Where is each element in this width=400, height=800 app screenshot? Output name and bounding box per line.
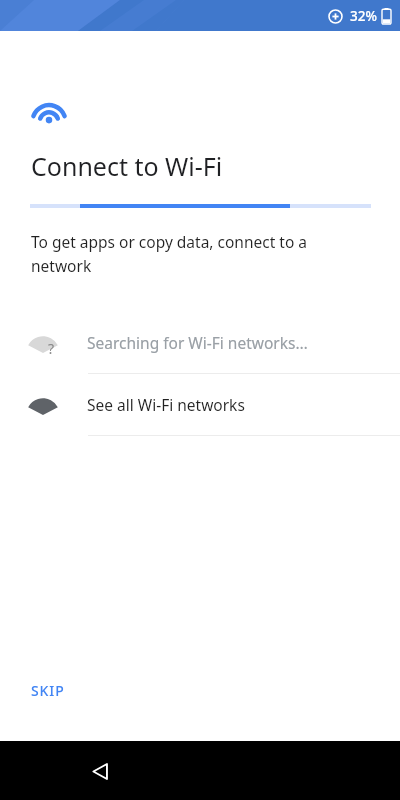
staticText: Connect to Wi-Fi: [31, 149, 223, 183]
staticText: To get apps or copy data, connect to a n…: [31, 231, 308, 276]
staticText: 32%: [350, 7, 377, 25]
staticText: SKIP: [31, 681, 65, 700]
staticText: ?: [48, 339, 55, 358]
staticText: Searching for Wi-Fi networks…: [87, 332, 308, 353]
button[interactable]: See all Wi-Fi networks: [0, 374, 400, 435]
button[interactable]: Back: [78, 749, 122, 793]
button[interactable]: SKIP: [18, 672, 78, 709]
button[interactable]: ?: [0, 312, 400, 373]
staticText: See all Wi-Fi networks: [87, 394, 245, 415]
